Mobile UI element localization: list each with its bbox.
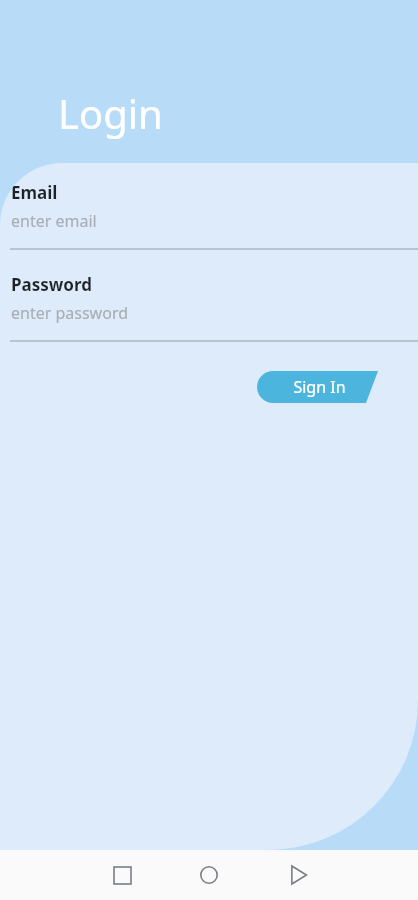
button[interactable]: Home [191,857,227,893]
button[interactable]: Sign In [257,371,378,403]
staticText: Email [11,181,58,204]
staticText: Login [58,86,163,140]
button[interactable]: Back [280,857,316,893]
staticText: Sign In [293,376,346,398]
staticText: Password [11,273,92,296]
button[interactable]: enter password [0,302,418,326]
staticText: enter password [11,302,129,324]
button[interactable]: enter email [0,210,418,234]
button[interactable]: Recent apps [104,857,140,893]
staticText: enter email [11,210,97,232]
